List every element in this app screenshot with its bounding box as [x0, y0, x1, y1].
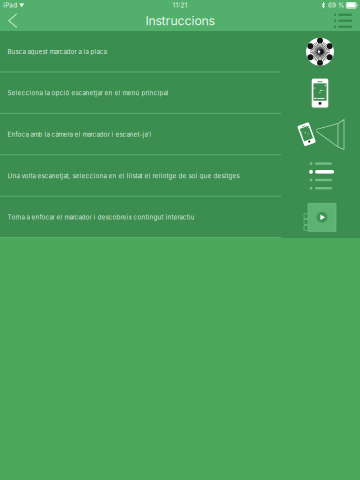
button[interactable]: Torna a enfocar el marcador i descobreix… [0, 197, 360, 238]
staticText: Torna a enfocar el marcador i descobreix… [7, 213, 194, 221]
staticText: Instruccions [145, 13, 214, 28]
staticText: Enfoca amb la càmera el marcador i escan… [7, 131, 151, 138]
staticText: Una volta escanetjat, selecciona en el l… [7, 172, 239, 180]
button[interactable]: Llistat [324, 11, 360, 31]
staticText: Selecciona la opció escanetjar en el men… [7, 89, 168, 97]
staticText: iPad [3, 1, 17, 9]
staticText: 11:21 [172, 1, 187, 9]
button[interactable]: Busca aquest marcador a la placa [0, 31, 360, 72]
staticText: 69 % [328, 1, 344, 9]
button[interactable]: Selecciona la opció escanetjar en el men… [0, 72, 360, 114]
staticText: Busca aquest marcador a la placa [7, 48, 106, 55]
button[interactable]: Back [0, 11, 27, 31]
button[interactable]: Una volta escanetjat, selecciona en el l… [0, 155, 360, 197]
button[interactable]: Enfoca amb la càmera el marcador i escan… [0, 114, 360, 155]
